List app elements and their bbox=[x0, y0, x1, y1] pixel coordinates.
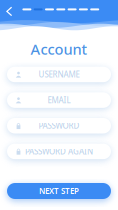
button[interactable]: PASSWORD AGAIN bbox=[0, 144, 118, 159]
staticText: Account bbox=[30, 39, 87, 59]
button[interactable]: Back bbox=[0, 3, 17, 19]
button[interactable]: NEXT STEP bbox=[0, 183, 118, 199]
staticText: PASSWORD AGAIN bbox=[25, 146, 93, 157]
staticText: EMAIL bbox=[47, 95, 70, 105]
staticText: NEXT STEP bbox=[39, 186, 79, 196]
staticText: PASSWORD bbox=[38, 120, 79, 131]
button[interactable]: PASSWORD bbox=[0, 118, 118, 133]
staticText: USERNAME bbox=[38, 69, 79, 80]
button[interactable]: EMAIL bbox=[0, 92, 118, 108]
button[interactable]: USERNAME bbox=[0, 67, 118, 82]
